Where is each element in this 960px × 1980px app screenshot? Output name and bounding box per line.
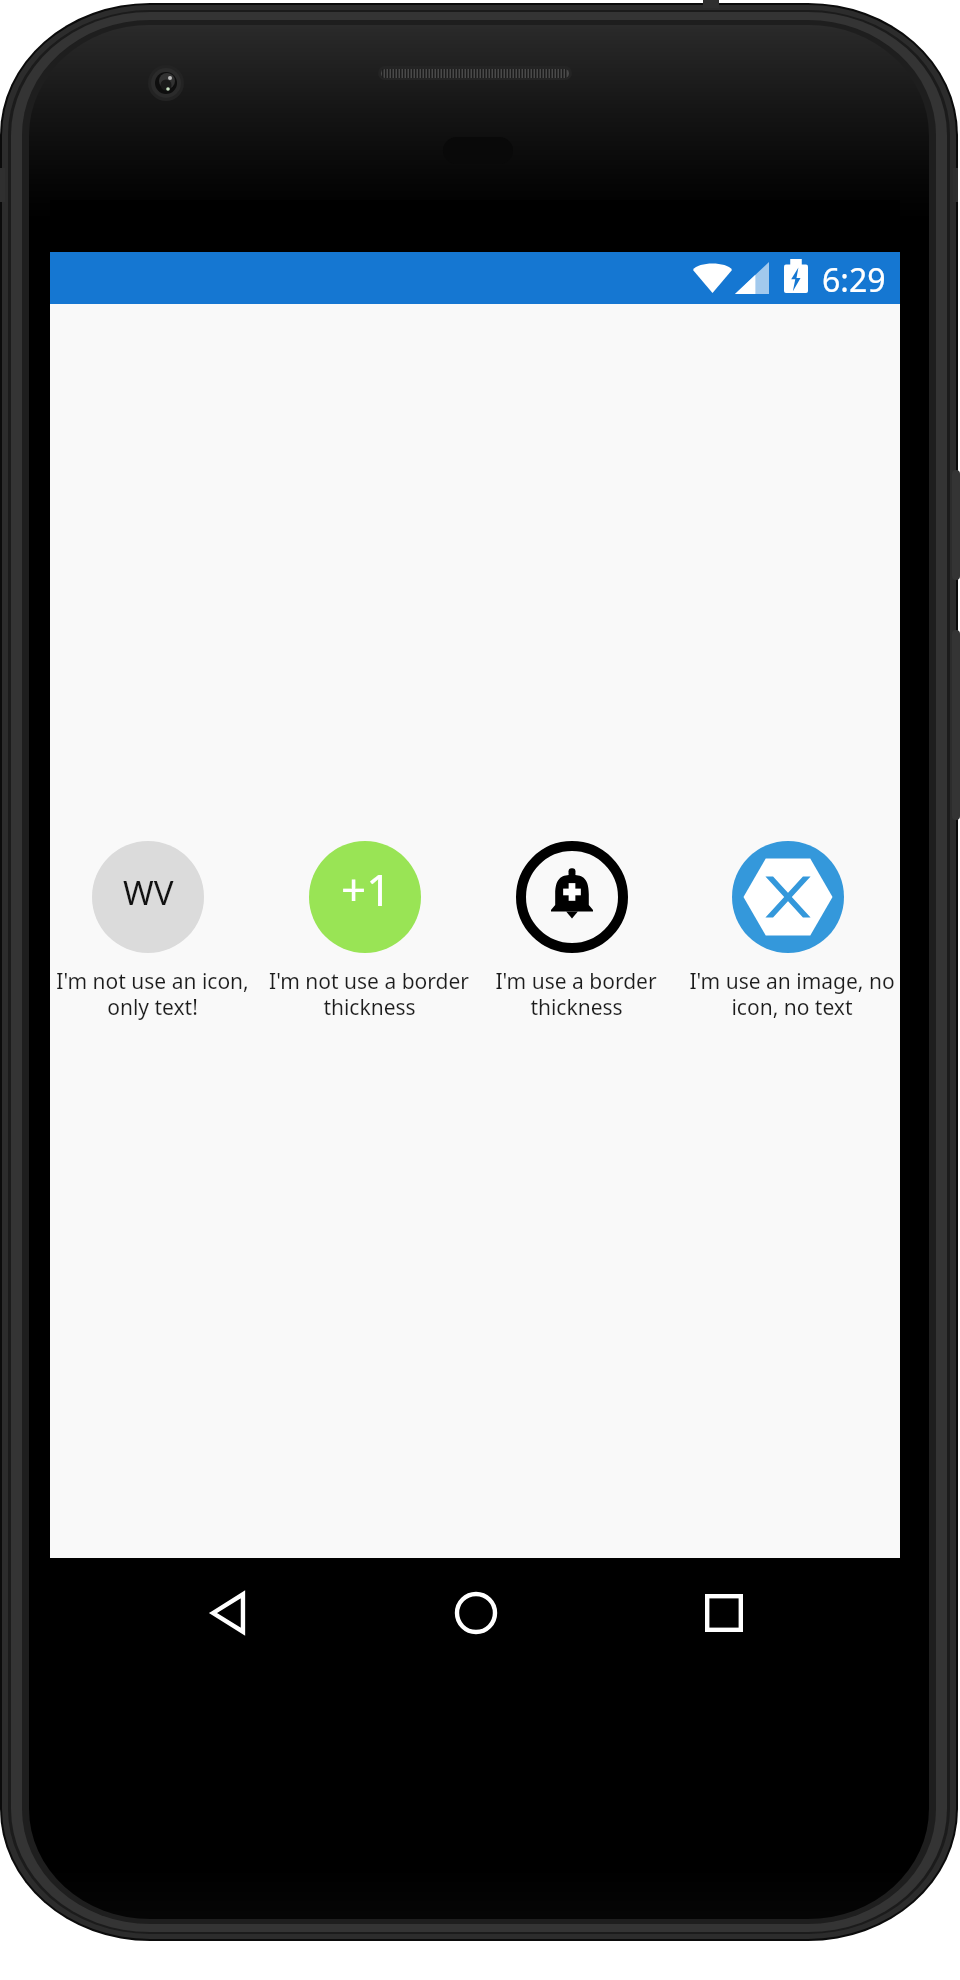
button[interactable]: Back: [182, 1567, 274, 1659]
button[interactable]: WV: [92, 841, 204, 953]
button[interactable]: Xamarin logo: [732, 841, 844, 953]
staticText: thickness: [323, 993, 416, 1022]
button[interactable]: +1: [309, 841, 421, 953]
button[interactable]: Recent apps: [678, 1567, 770, 1659]
staticText: 6:29: [822, 258, 886, 302]
staticText: +1: [341, 859, 392, 919]
button[interactable]: Home: [430, 1567, 522, 1659]
staticText: icon, no text: [731, 993, 853, 1022]
button[interactable]: Add alert: [466, 841, 678, 1025]
staticText: WV: [123, 870, 174, 915]
staticText: I'm not use an icon,: [56, 967, 249, 996]
button[interactable]: +1: [259, 841, 471, 1025]
button[interactable]: Add alert: [516, 841, 628, 953]
staticText: thickness: [530, 993, 623, 1022]
button[interactable]: Xamarin logo: [682, 841, 894, 1025]
staticText: I'm use a border: [495, 967, 657, 996]
button[interactable]: WV: [42, 841, 254, 1025]
staticText: I'm use an image, no: [689, 967, 895, 996]
staticText: only text!: [107, 993, 198, 1022]
staticText: I'm not use a border: [269, 967, 469, 996]
